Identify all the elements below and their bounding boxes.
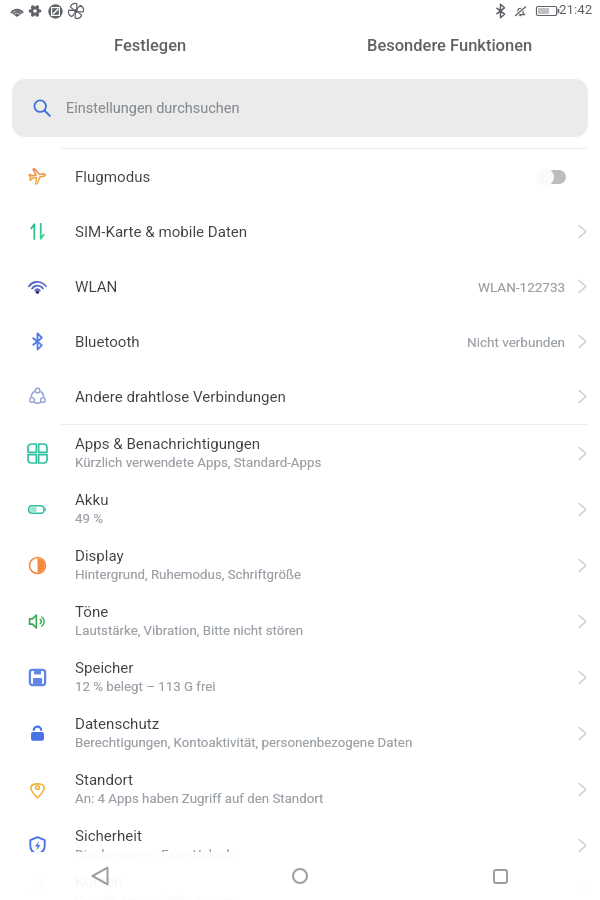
staticText: WLAN	[75, 278, 478, 296]
button[interactable]: Besondere Funktionen	[300, 27, 600, 64]
staticText: Displaysperre, Face Unlock	[75, 847, 234, 863]
staticText: Flugmodus	[75, 168, 536, 186]
button[interactable]: Festlegen	[0, 27, 300, 64]
button[interactable]: Apps & Benachrichtigungen	[0, 425, 600, 481]
staticText: Andere drahtlose Verbindungen	[75, 388, 578, 406]
staticText: 49 %	[75, 511, 103, 527]
button[interactable]: Datenschutz	[0, 705, 600, 761]
button[interactable]: Standort	[0, 761, 600, 817]
button[interactable]: Töne	[0, 593, 600, 649]
staticText: Kürzlich verwendete Apps, Standard-Apps	[75, 455, 322, 471]
button[interactable]: Home	[200, 852, 400, 900]
button[interactable]: Akku	[0, 481, 600, 537]
button[interactable]: Konten	[0, 873, 600, 900]
button[interactable]: Sicherheit	[0, 817, 600, 873]
staticText: Display	[75, 547, 124, 565]
button[interactable]: WLAN	[0, 259, 600, 314]
button[interactable]: Speicher	[0, 649, 600, 705]
staticText: Berechtigungen, Kontoaktivität, personen…	[75, 735, 413, 751]
button[interactable]: Andere drahtlose Verbindungen	[0, 369, 600, 424]
staticText: Einstellungen durchsuchen	[66, 100, 240, 117]
button[interactable]: Flugmodus	[0, 149, 600, 204]
staticText: Hintergrund, Ruhemodus, Schriftgröße	[75, 567, 301, 583]
button[interactable]: Einstellungen durchsuchen	[12, 79, 588, 137]
button[interactable]: Recents	[400, 852, 600, 900]
staticText: Sicherheit	[75, 827, 142, 845]
staticText: Akku	[75, 491, 109, 509]
button[interactable]: Back	[0, 852, 200, 900]
staticText: Apps & Benachrichtigungen	[75, 435, 261, 453]
staticText: Standort	[75, 771, 133, 789]
staticText: Besondere Funktionen	[367, 36, 533, 55]
button[interactable]: SIM-Karte & mobile Daten	[0, 204, 600, 259]
button[interactable]: Bluetooth	[0, 314, 600, 369]
staticText: Datenschutz	[75, 715, 160, 733]
staticText: 12 % belegt – 113 G frei	[75, 679, 216, 695]
button[interactable]: Display	[0, 537, 600, 593]
staticText: Speicher	[75, 659, 134, 677]
staticText: SIM-Karte & mobile Daten	[75, 223, 578, 241]
staticText: Lautstärke, Vibration, Bitte nicht störe…	[75, 623, 304, 639]
staticText: Konten	[75, 873, 123, 891]
staticText: Festlegen	[114, 36, 187, 55]
staticText: An: 4 Apps haben Zugriff auf den Standor…	[75, 791, 324, 807]
staticText: WLAN-122733	[478, 279, 566, 295]
staticText: Bluetooth	[75, 333, 467, 351]
staticText: 21:42	[559, 2, 593, 18]
staticText: Nicht verbunden	[467, 334, 566, 350]
staticText: Töne	[75, 603, 109, 621]
